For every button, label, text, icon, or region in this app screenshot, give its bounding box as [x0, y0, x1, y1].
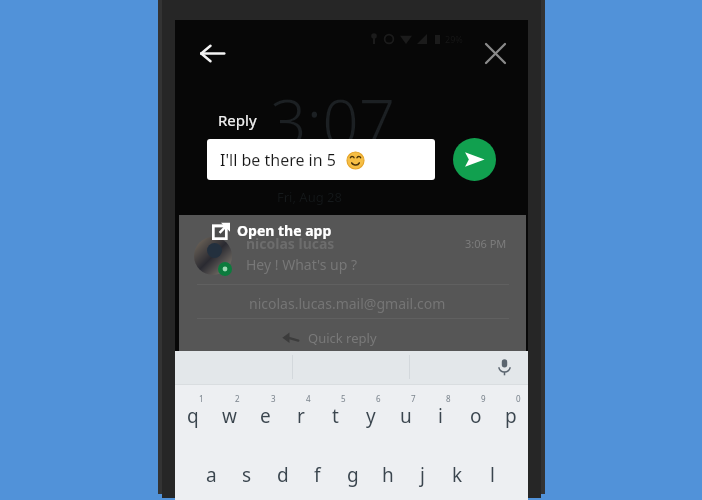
button[interactable]: g	[335, 452, 370, 490]
button[interactable]: 2	[211, 393, 247, 431]
staticText: 9	[481, 393, 486, 404]
staticText: s	[242, 462, 252, 488]
staticText: nicolas.lucas.mail@gmail.com	[249, 294, 446, 313]
button[interactable]: Back	[189, 30, 235, 76]
staticText: I'll be there in 5	[220, 149, 336, 171]
staticText: Quick reply	[308, 329, 377, 347]
staticText: i	[438, 403, 443, 429]
button[interactable]: a	[193, 452, 229, 490]
staticText: 2	[235, 393, 240, 404]
staticText: j	[420, 462, 425, 488]
staticText: f	[314, 462, 321, 488]
button[interactable]: Voice input	[491, 354, 518, 381]
button[interactable]: d	[265, 452, 300, 490]
button[interactable]: j	[405, 452, 440, 490]
button[interactable]: s	[229, 452, 265, 490]
button[interactable]: Quick reply	[282, 325, 377, 351]
staticText: u	[400, 403, 412, 429]
staticText: 6	[376, 393, 381, 404]
button[interactable]: I'll be there in 5	[207, 139, 435, 180]
button[interactable]: 5	[318, 393, 353, 431]
staticText: w	[222, 403, 237, 429]
staticText: p	[505, 403, 517, 429]
staticText: 1	[199, 393, 204, 404]
staticText: Reply	[218, 110, 257, 130]
button[interactable]: 7	[388, 393, 423, 431]
button[interactable]: 6	[353, 393, 388, 431]
staticText: e	[260, 403, 271, 429]
button[interactable]: 1	[175, 393, 211, 431]
staticText: k	[452, 462, 463, 488]
button[interactable]: 4	[283, 393, 318, 431]
staticText: h	[382, 462, 394, 488]
button[interactable]: l	[475, 452, 510, 490]
staticText: y	[366, 403, 376, 429]
button[interactable]: 3	[247, 393, 283, 431]
staticText: 7	[411, 393, 416, 404]
staticText: o	[470, 403, 482, 429]
staticText: 3	[271, 393, 276, 404]
staticText: l	[490, 462, 495, 488]
staticText: 0	[516, 393, 521, 404]
staticText: Hey ! What's up ?	[246, 255, 358, 274]
button[interactable]: 8	[423, 393, 458, 431]
button[interactable]: Send	[453, 138, 496, 181]
staticText: g	[347, 462, 359, 488]
button[interactable]: 9	[458, 393, 493, 431]
staticText: Open the app	[237, 221, 332, 240]
staticText: nicolas lucas	[246, 234, 335, 253]
staticText: Fri, Aug 28	[277, 188, 342, 206]
staticText: 29%	[445, 33, 463, 45]
button[interactable]: k	[440, 452, 475, 490]
staticText: 4	[306, 393, 311, 404]
staticText: a	[206, 462, 217, 488]
staticText: r	[297, 403, 305, 429]
staticText: d	[277, 462, 289, 488]
staticText: 3:07	[270, 78, 396, 165]
button[interactable]: f	[300, 452, 335, 490]
staticText: q	[187, 403, 199, 429]
button[interactable]: h	[370, 452, 405, 490]
button[interactable]: Close	[472, 30, 518, 76]
staticText: 3:06 PM	[465, 236, 507, 251]
button[interactable]: 0	[493, 393, 528, 431]
staticText: 8	[446, 393, 451, 404]
button[interactable]: Open the app	[212, 221, 332, 240]
staticText: 5	[341, 393, 346, 404]
staticText: t	[332, 403, 339, 429]
